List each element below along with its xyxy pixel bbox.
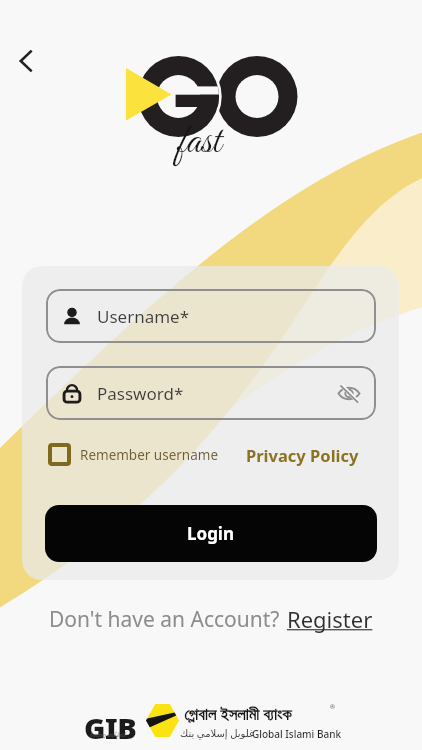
button[interactable]: Login — [45, 505, 377, 562]
staticText: Username* — [97, 305, 190, 328]
button[interactable]: Password* — [46, 366, 376, 420]
staticText: غلوبل إسلامي بنك — [180, 726, 255, 740]
staticText: Login — [187, 522, 235, 545]
button[interactable]: Username* — [46, 289, 376, 343]
staticText: Remember username — [80, 446, 219, 464]
staticText: Global Islami Bank — [252, 727, 342, 741]
button[interactable]: Privacy Policy — [246, 444, 359, 466]
staticText: banking with faith — [90, 731, 126, 740]
button[interactable]: Register — [287, 604, 373, 634]
staticText: Password* — [97, 382, 184, 405]
staticText: Don't have an Account? — [49, 605, 280, 634]
button[interactable]: Remember username — [48, 443, 219, 466]
button[interactable]: Back — [4, 38, 50, 84]
staticText: গ্লোবাল ইসলামী ব্যাংক — [184, 702, 292, 724]
staticText: GIB — [84, 708, 137, 747]
staticText: ® — [330, 703, 335, 711]
staticText: fast — [178, 116, 221, 169]
button[interactable]: Show password — [334, 378, 364, 408]
